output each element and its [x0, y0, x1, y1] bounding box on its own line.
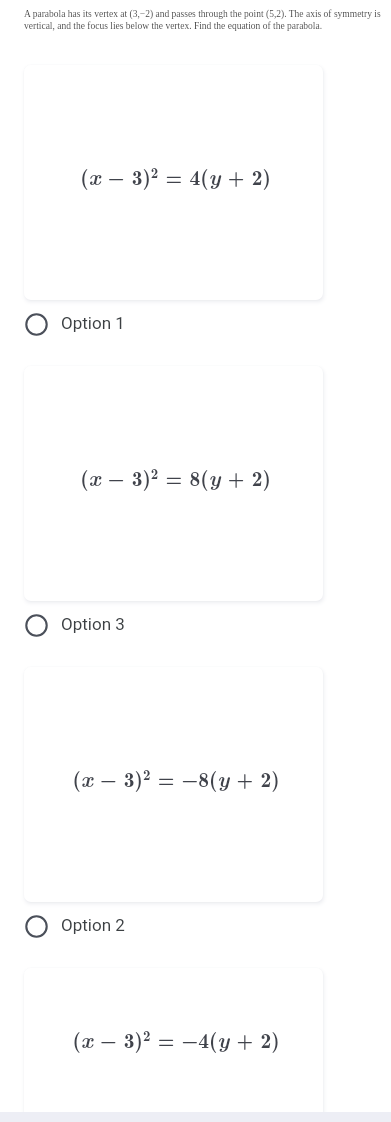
staticText: (x − 3)2 = 4(y + 2)	[80, 160, 271, 191]
staticText: (x − 3)2 = −4(y + 2)	[72, 1023, 280, 1054]
staticText: A parabola has its vertex at (3,−2) and …	[24, 9, 387, 31]
button[interactable]: Option 2	[0, 902, 391, 968]
button[interactable]: Option 3	[0, 601, 391, 667]
button[interactable]: (x − 3)2 = −4(y + 2)	[24, 968, 323, 1122]
button[interactable]: (x − 3)2 = 8(y + 2)	[24, 366, 323, 601]
button[interactable]: (x − 3)2 = −8(y + 2)	[24, 667, 323, 902]
staticText: (x − 3)2 = 8(y + 2)	[80, 461, 271, 492]
button[interactable]: (x − 3)2 = 4(y + 2)	[24, 65, 323, 300]
staticText: Option 3	[61, 614, 125, 634]
staticText: (x − 3)2 = −8(y + 2)	[72, 762, 280, 793]
staticText: Option 2	[61, 915, 125, 935]
staticText: Option 1	[61, 313, 125, 333]
button[interactable]: Option 1	[0, 300, 391, 366]
